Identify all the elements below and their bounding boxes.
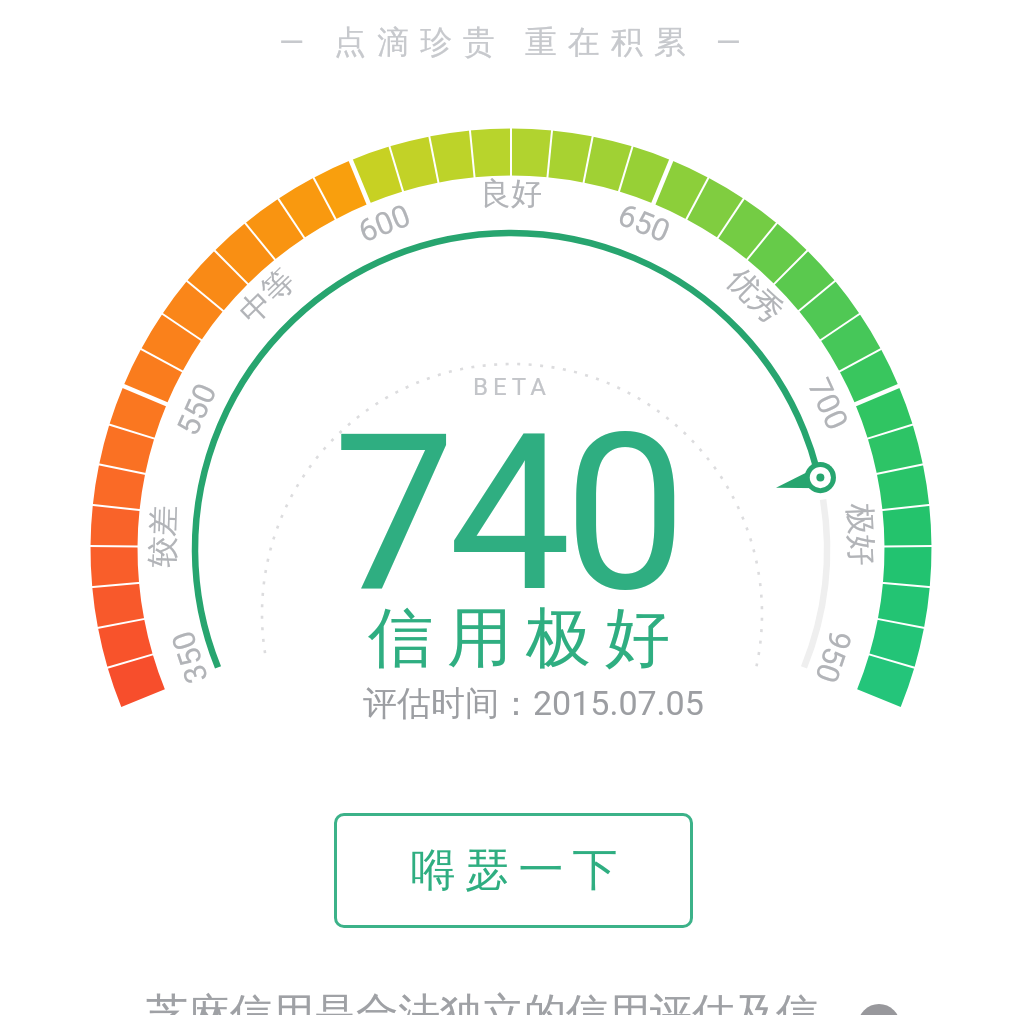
staticText: 600: [353, 197, 416, 249]
staticText: 950: [808, 626, 859, 688]
button[interactable]: 嘚瑟一下: [334, 813, 693, 928]
staticText: 中等: [231, 261, 303, 332]
staticText: 嘚瑟一下: [406, 842, 622, 899]
staticText: 较差: [142, 505, 183, 568]
button[interactable]: [858, 1004, 900, 1015]
staticText: 评估时间：2015.07.05: [363, 682, 704, 725]
staticText: 650: [613, 196, 676, 250]
staticText: 极好: [840, 503, 882, 566]
staticText: 740: [333, 386, 680, 641]
staticText: 700: [801, 372, 856, 436]
staticText: 550: [169, 377, 224, 441]
staticText: 信用极好: [361, 597, 677, 679]
staticText: 优秀: [719, 260, 791, 331]
staticText: 良好: [480, 174, 542, 213]
staticText: — 点滴珍贵 重在积累 —: [279, 22, 752, 62]
staticText: 350: [164, 626, 215, 688]
staticText: BETA: [473, 373, 551, 401]
staticText: 芝麻信用是合法独立的信用评估及信: [146, 988, 818, 1015]
